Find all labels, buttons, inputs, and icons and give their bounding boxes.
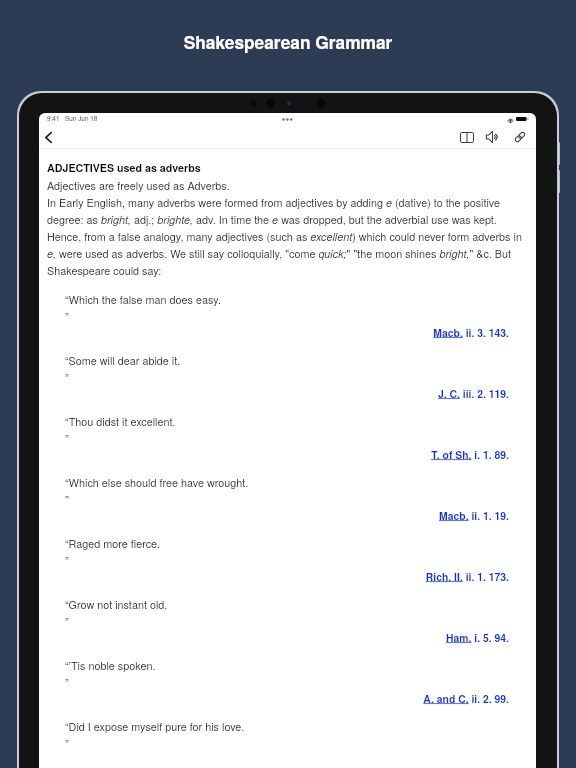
button[interactable]: J. C. iii. 2. 119. bbox=[47, 386, 509, 401]
staticText: “Raged more fierce. bbox=[65, 536, 161, 551]
staticText: “Grow not instant old. bbox=[65, 597, 168, 612]
staticText: Shakespearean Grammar bbox=[0, 30, 576, 55]
button[interactable]: Share link bbox=[509, 126, 531, 148]
button[interactable]: Read aloud bbox=[481, 126, 503, 148]
staticText: ” bbox=[65, 431, 69, 446]
staticText: “Which else should free have wrought. bbox=[65, 475, 249, 490]
staticText: “Thou didst it excellent. bbox=[65, 414, 176, 429]
staticText: ” bbox=[65, 309, 69, 324]
staticText: “’Tis noble spoken. bbox=[65, 658, 156, 673]
button[interactable]: T. of Sh. i. 1. 89. bbox=[47, 447, 509, 462]
staticText: 9:41 bbox=[47, 114, 60, 123]
button[interactable]: Macb. ii. 1. 19. bbox=[47, 508, 509, 523]
staticText: ” bbox=[65, 553, 69, 568]
staticText: ” bbox=[65, 675, 69, 690]
button[interactable]: Back bbox=[39, 126, 59, 148]
staticText: “Some will dear abide it. bbox=[65, 353, 181, 368]
staticText: ” bbox=[65, 370, 69, 385]
staticText: ADJECTIVES used as adverbs bbox=[47, 160, 201, 175]
staticText: ” bbox=[65, 492, 69, 507]
button[interactable]: Rich. II. ii. 1. 173. bbox=[47, 569, 509, 584]
button[interactable]: Table of contents bbox=[456, 126, 478, 148]
staticText: “Did I expose myself pure for his love. bbox=[65, 719, 245, 734]
staticText: ” bbox=[65, 614, 69, 629]
staticText: “Which the false man does easy. bbox=[65, 292, 221, 307]
staticText: Adjectives are freely used as Adverbs. I… bbox=[47, 178, 528, 278]
staticText: Sun Jun 18 bbox=[65, 114, 98, 123]
button[interactable]: A. and C. ii. 2. 99. bbox=[47, 691, 509, 706]
staticText: ” bbox=[65, 736, 69, 751]
button[interactable]: Macb. ii. 3. 143. bbox=[47, 325, 509, 340]
button[interactable]: Ham. i. 5. 94. bbox=[47, 630, 509, 645]
